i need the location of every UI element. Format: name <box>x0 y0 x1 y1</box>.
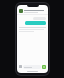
button[interactable] <box>25 21 46 25</box>
button[interactable]: Send <box>42 65 46 69</box>
other: Account avatar <box>19 9 23 13</box>
button[interactable]: Menu <box>19 65 22 68</box>
button[interactable] <box>23 65 41 69</box>
button[interactable]: Account avatar <box>17 8 48 14</box>
